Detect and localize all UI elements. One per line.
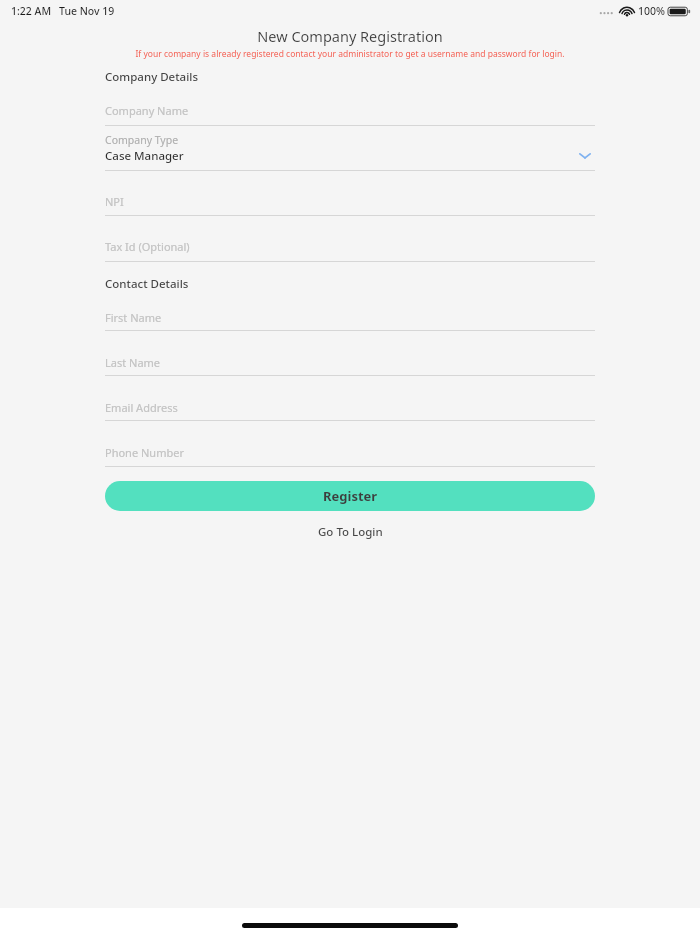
staticText: Go To Login [318,524,383,540]
button[interactable] [105,302,595,332]
button[interactable] [105,392,595,422]
staticText: Contact Details [105,276,189,292]
staticText: 1:22 AM [11,4,52,18]
staticText: Register [323,487,378,505]
staticText: NPI [105,194,124,209]
staticText: Phone Number [105,445,184,460]
staticText: If your company is already registered co… [135,48,565,60]
button[interactable] [105,186,595,217]
button[interactable]: Select company type [105,129,595,174]
staticText: 100% [638,4,665,18]
button[interactable]: Go To Login [280,521,420,543]
staticText: Company Type [105,133,179,147]
staticText: Case Manager [105,148,184,164]
staticText: Email Address [105,400,178,415]
button[interactable] [105,347,595,377]
staticText: Tax Id (Optional) [105,239,190,254]
staticText: First Name [105,310,162,325]
button[interactable] [105,231,595,263]
staticText: Tue Nov 19 [59,4,115,18]
button[interactable] [105,437,595,468]
button[interactable] [105,95,595,127]
staticText: Last Name [105,355,161,370]
staticText: Company Details [105,69,198,85]
staticText: Company Name [105,103,189,118]
staticText: New Company Registration [257,26,443,46]
button[interactable]: Register [105,481,595,511]
